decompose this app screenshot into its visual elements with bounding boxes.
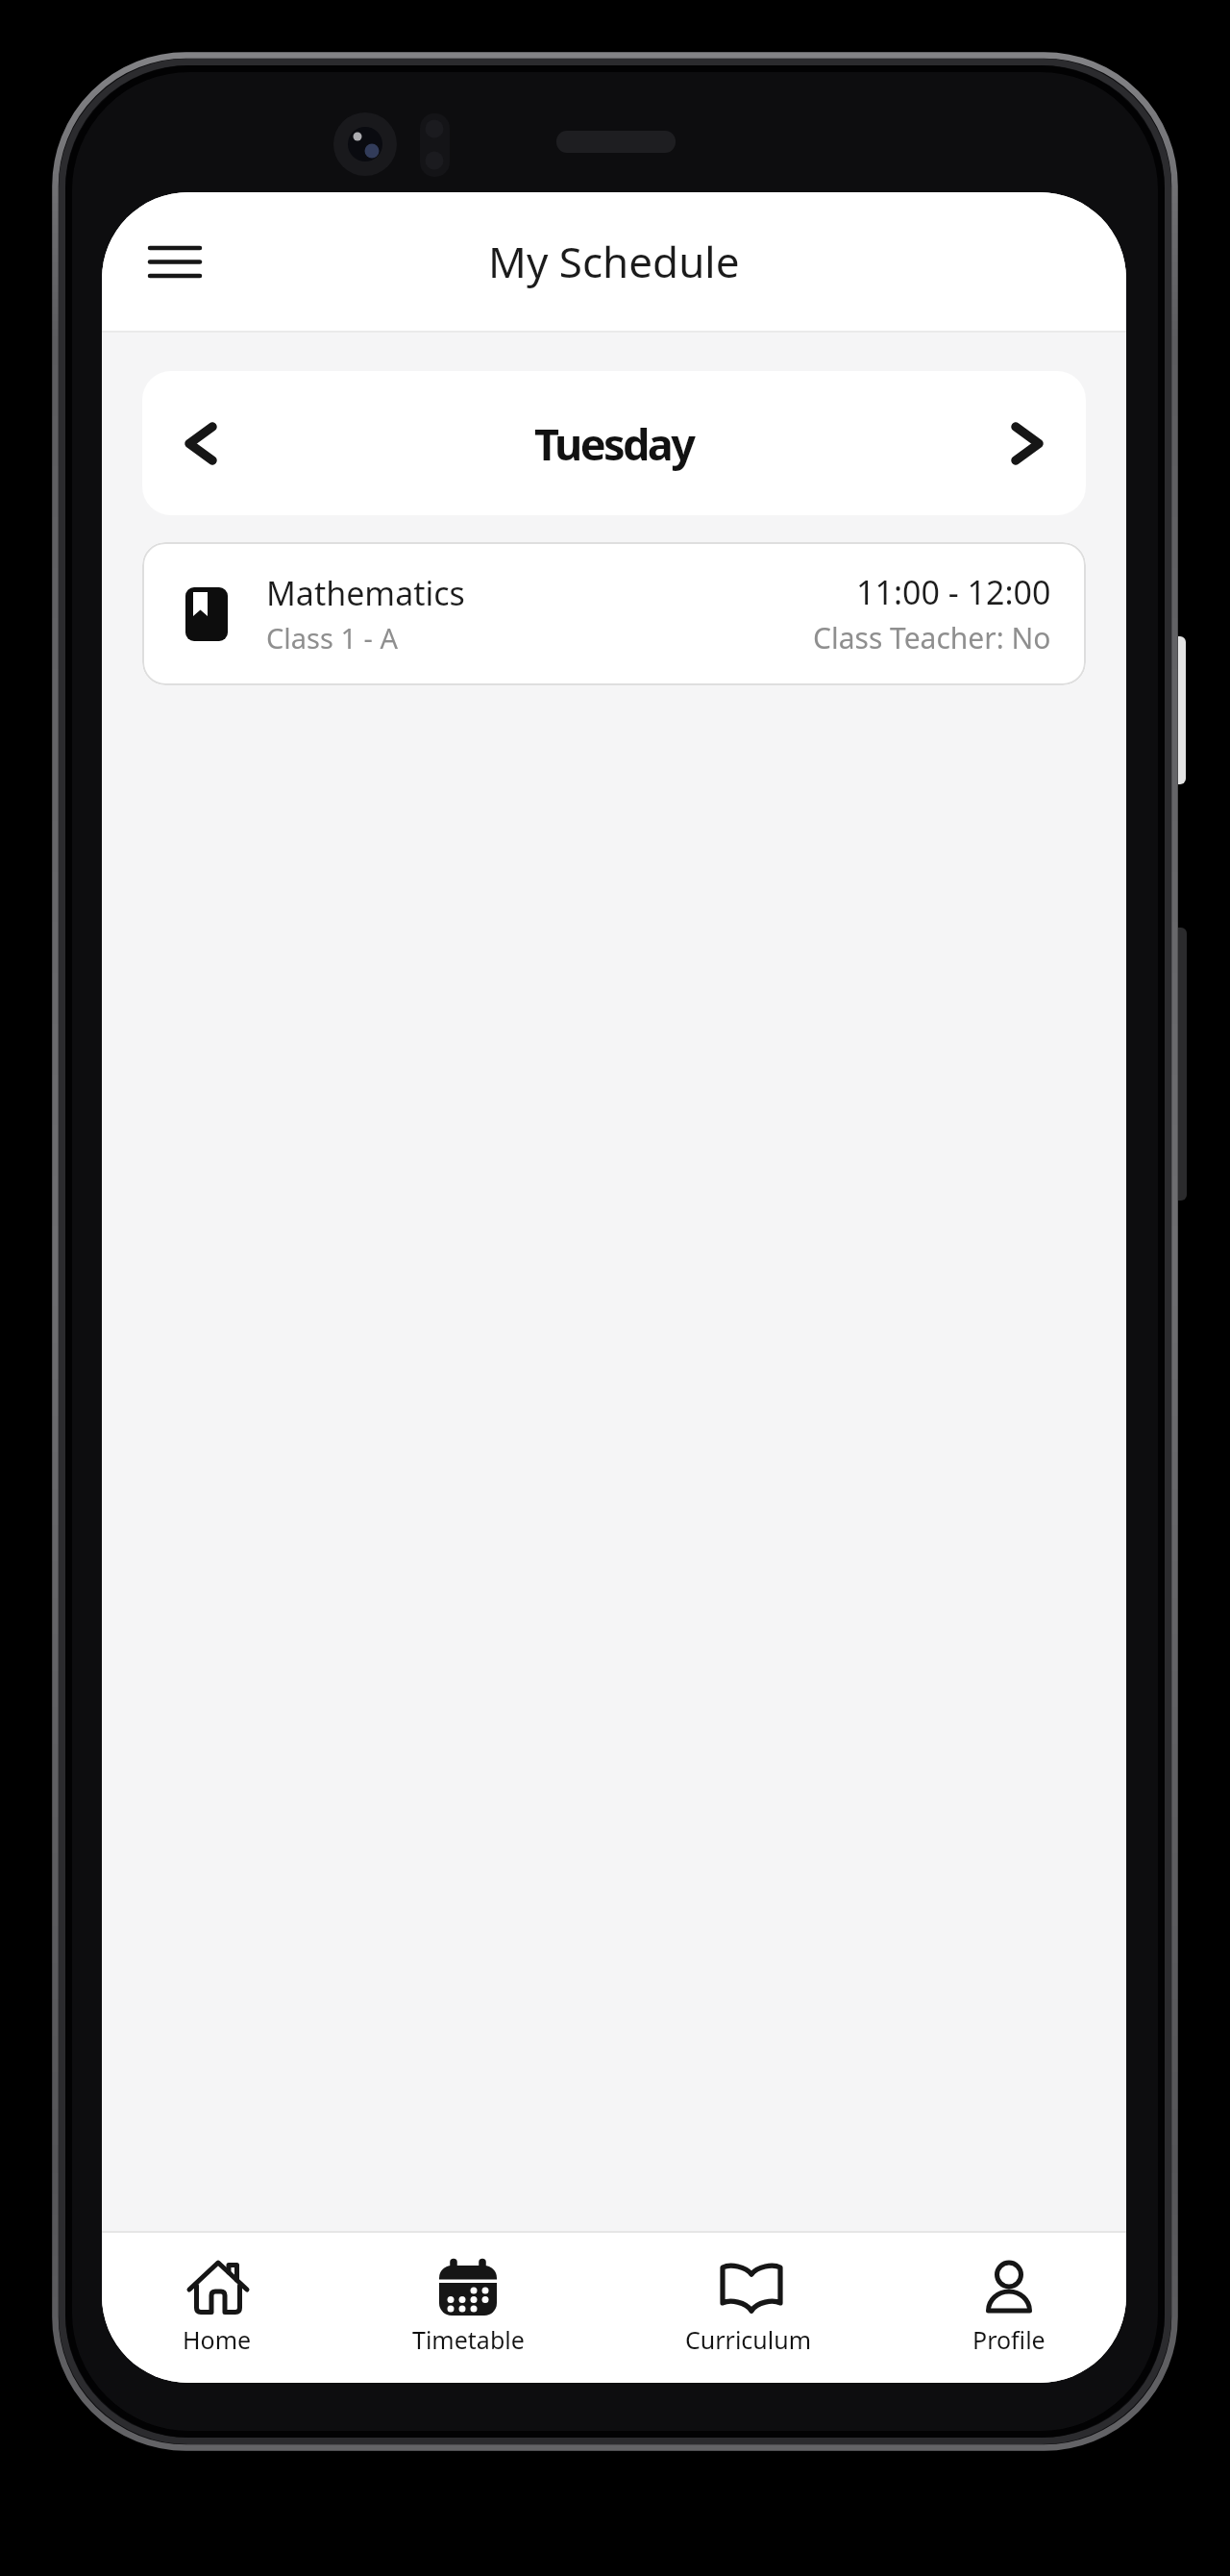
staticText: Class Teacher: No: [813, 618, 1051, 657]
staticText: Curriculum: [685, 2323, 812, 2356]
button[interactable]: [142, 371, 259, 515]
staticText: Class 1 - A: [266, 619, 398, 656]
staticText: 11:00 - 12:00: [856, 570, 1051, 614]
button[interactable]: [969, 371, 1086, 515]
staticText: Home: [183, 2323, 252, 2356]
button[interactable]: Profile: [972, 2233, 1045, 2383]
staticText: Mathematics: [266, 571, 465, 615]
button[interactable]: Home: [183, 2233, 252, 2383]
staticText: Profile: [972, 2323, 1045, 2356]
staticText: My Schedule: [488, 233, 740, 290]
button[interactable]: Timetable: [412, 2233, 525, 2383]
button[interactable]: Curriculum: [685, 2233, 812, 2383]
staticText: Tuesday: [534, 414, 694, 473]
button[interactable]: [135, 228, 215, 295]
button[interactable]: Mathematics: [142, 542, 1086, 685]
staticText: Timetable: [412, 2323, 525, 2356]
